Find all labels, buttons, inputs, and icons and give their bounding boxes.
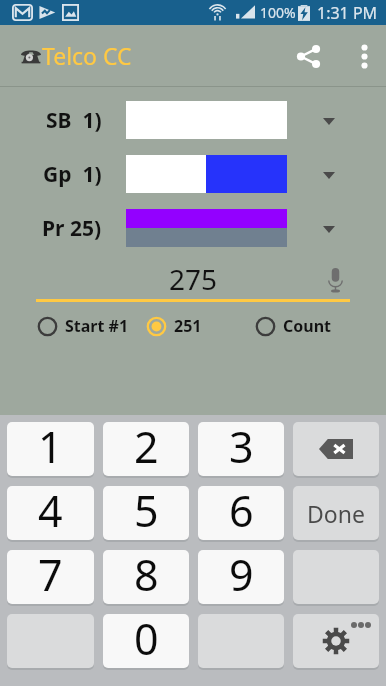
staticText: 251 <box>174 315 202 337</box>
button[interactable] <box>293 422 379 476</box>
button[interactable]: 8 <box>103 550 189 604</box>
staticText: Telco CC <box>42 40 132 71</box>
button[interactable]: Expand Pr 25) <box>309 209 349 247</box>
button[interactable]: 2 <box>103 422 189 476</box>
button[interactable]: Count <box>255 313 332 339</box>
button[interactable]: Share <box>284 32 332 80</box>
staticText: 1 <box>38 422 63 471</box>
button[interactable]: Voice input <box>311 260 359 290</box>
staticText: Gp 1) <box>43 160 102 189</box>
button[interactable]: Start #1 <box>37 313 129 339</box>
staticText: 100% <box>260 3 296 22</box>
button[interactable]: 9 <box>198 550 284 604</box>
button[interactable]: 1 <box>7 422 94 476</box>
button[interactable]: 3 <box>198 422 284 476</box>
button[interactable]: 4 <box>7 486 94 540</box>
staticText: Count <box>283 315 332 337</box>
staticText: SB 1) <box>46 106 102 135</box>
button[interactable]: 5 <box>103 486 189 540</box>
staticText: Pr 25) <box>42 214 102 243</box>
staticText: 5 <box>134 486 159 535</box>
staticText: Done <box>307 498 365 529</box>
button[interactable]: 7 <box>7 550 94 604</box>
staticText: 0 <box>134 614 159 663</box>
button[interactable]: Expand Gp 1) <box>309 155 349 193</box>
button[interactable]: Done <box>293 486 379 540</box>
button[interactable] <box>126 209 287 247</box>
button[interactable] <box>126 155 287 193</box>
staticText: 6 <box>229 486 254 535</box>
staticText: 3 <box>229 422 254 471</box>
staticText: 7 <box>38 550 63 599</box>
staticText: 1:31 PM <box>317 2 378 24</box>
staticText: 8 <box>134 550 159 599</box>
staticText: Start #1 <box>65 315 129 337</box>
button[interactable]: 6 <box>198 486 284 540</box>
button[interactable] <box>293 614 379 668</box>
staticText: 275 <box>169 260 218 290</box>
button[interactable]: More options <box>342 34 386 78</box>
staticText: 4 <box>38 486 63 535</box>
button[interactable]: 275 <box>36 260 351 290</box>
button[interactable]: 0 <box>103 614 189 668</box>
button[interactable]: Expand SB 1) <box>309 101 349 139</box>
button[interactable]: 251 <box>146 313 202 339</box>
staticText: 9 <box>229 550 254 599</box>
staticText: 2 <box>134 422 159 471</box>
